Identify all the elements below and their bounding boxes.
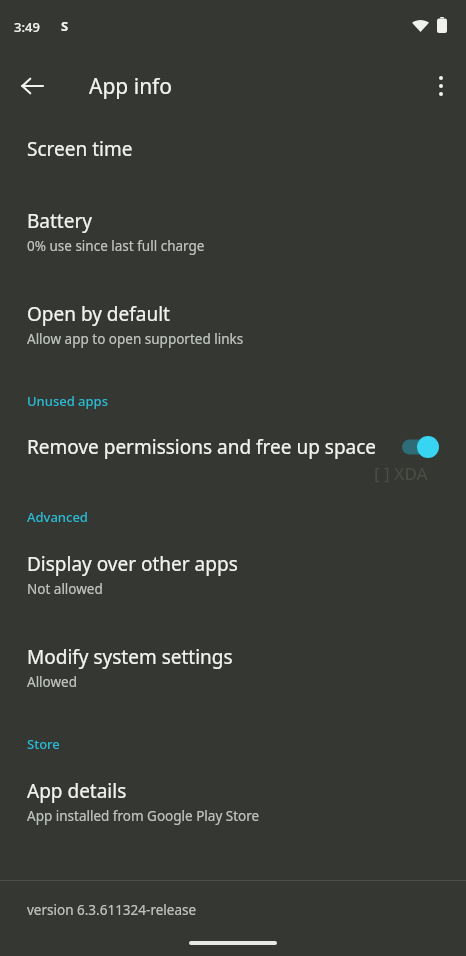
staticText: App installed from Google Play Store [27, 807, 260, 825]
staticText: App info [89, 72, 173, 101]
staticText: Screen time [27, 136, 133, 162]
staticText: Modify system settings [27, 644, 233, 670]
staticText: Not allowed [27, 580, 103, 598]
staticText: Battery [27, 208, 92, 234]
staticText: S [61, 17, 69, 35]
staticText: Display over other apps [27, 551, 238, 577]
staticText: App details [27, 778, 127, 804]
staticText: Store [27, 735, 60, 753]
staticText: Remove permissions and free up space [27, 434, 377, 460]
button[interactable]: Remove permissions toggle [402, 432, 446, 462]
staticText: version 6.3.611324-release [27, 901, 197, 919]
button[interactable]: More options [417, 62, 465, 110]
button[interactable]: Screen time [0, 125, 466, 166]
button[interactable]: App details [0, 753, 466, 829]
button[interactable]: Modify system settings [0, 602, 466, 695]
button[interactable]: Display over other apps [0, 526, 466, 602]
staticText: Allowed [27, 673, 78, 691]
button[interactable]: Remove permissions and free up space [0, 410, 466, 466]
staticText: Unused apps [27, 392, 108, 410]
staticText: [ ] XDA [374, 462, 428, 485]
staticText: Open by default [27, 301, 170, 327]
button[interactable]: Battery [0, 166, 466, 259]
button[interactable]: Back [8, 62, 56, 110]
button[interactable]: Open by default [0, 259, 466, 352]
staticText: Allow app to open supported links [27, 330, 244, 348]
staticText: Advanced [27, 508, 88, 526]
staticText: 0% use since last full charge [27, 237, 205, 255]
staticText: 3:49 [14, 18, 40, 36]
